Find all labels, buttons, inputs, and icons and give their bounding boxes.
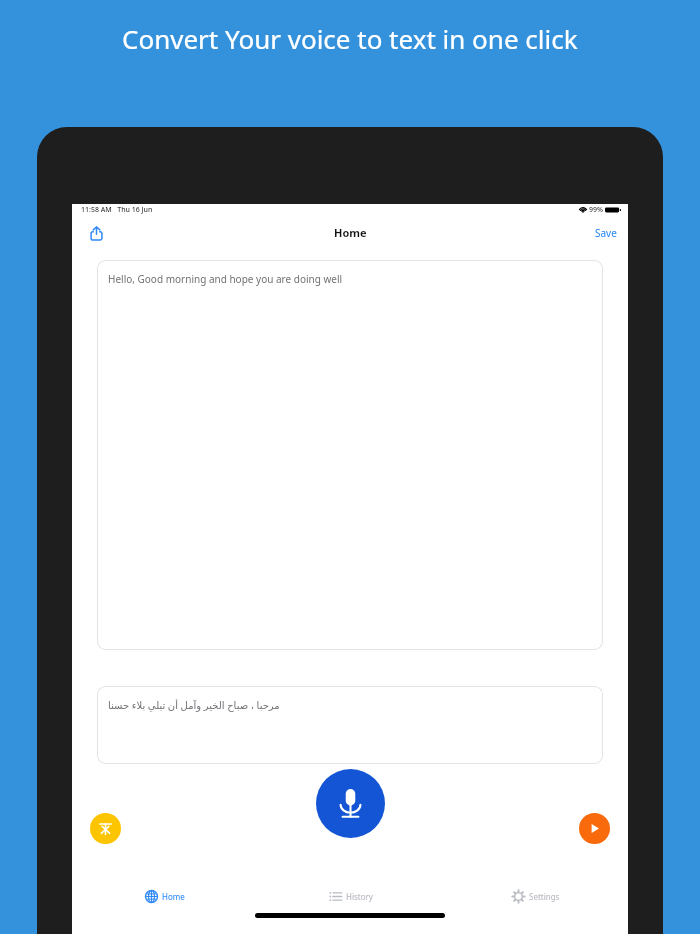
button[interactable]: Record [316, 769, 385, 838]
staticText: Home [334, 225, 367, 240]
button[interactable]: Settings [443, 881, 628, 911]
button[interactable]: Save [595, 226, 617, 240]
staticText: Convert Your voice to text in one click [122, 21, 578, 56]
button[interactable]: Play [579, 813, 610, 844]
staticText: Home [162, 891, 185, 902]
staticText: Settings [529, 891, 560, 902]
button[interactable]: Home [72, 881, 258, 911]
staticText: Save [595, 226, 617, 240]
button[interactable]: Share [84, 221, 108, 245]
staticText: Hello, Good morning and hope you are doi… [108, 272, 343, 286]
button[interactable]: مرحبا ، صباح الخير وآمل أن تبلي بلاء حسن… [97, 686, 603, 764]
button[interactable]: History [258, 881, 443, 911]
button[interactable]: Hello, Good morning and hope you are doi… [97, 260, 603, 650]
staticText: مرحبا ، صباح الخير وآمل أن تبلي بلاء حسن… [108, 698, 280, 712]
staticText: 11:58 AM Thu 16 Jun [81, 205, 153, 215]
staticText: 99% [589, 205, 603, 215]
button[interactable]: Translate [90, 813, 121, 844]
staticText: History [346, 891, 373, 902]
